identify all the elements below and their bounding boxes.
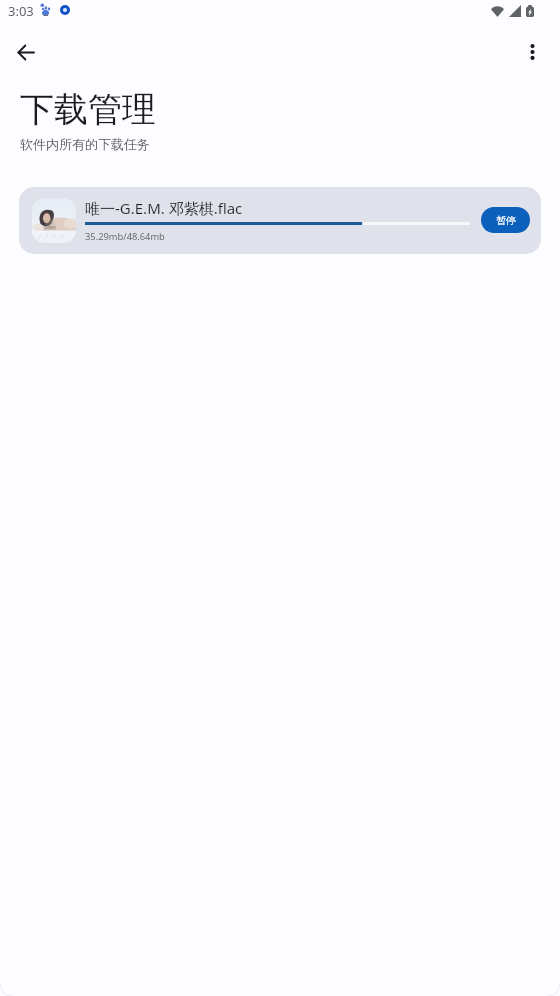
- staticText: 唯一-G.E.M. 邓紫棋.flac: [85, 198, 243, 218]
- staticText: 下载管理: [20, 88, 156, 131]
- staticText: 软件内所有的下载任务: [20, 136, 150, 152]
- staticText: 3:03: [8, 2, 34, 20]
- button[interactable]: 唯一-G.E.M. 邓紫棋.flac: [19, 187, 541, 254]
- staticText: 暂停: [496, 214, 516, 227]
- staticText: 35.29mb/48.64mb: [85, 230, 165, 243]
- button[interactable]: More options: [516, 36, 548, 68]
- button[interactable]: Back: [10, 36, 42, 68]
- button[interactable]: 暂停: [481, 207, 530, 233]
